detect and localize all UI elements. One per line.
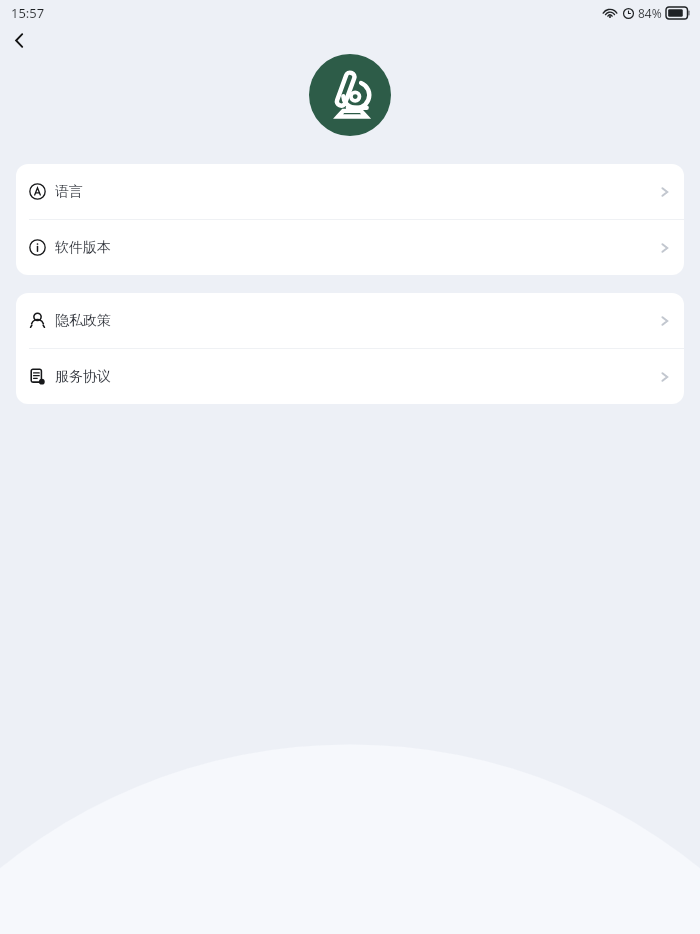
other: App logo (309, 54, 391, 136)
staticText: 服务协议 (55, 368, 111, 386)
staticText: 84% (638, 5, 662, 21)
staticText: 15:57 (11, 4, 45, 22)
button[interactable]: 语言 (16, 164, 684, 219)
button[interactable]: 软件版本 (16, 220, 684, 275)
staticText: 软件版本 (55, 239, 111, 257)
button[interactable]: Back (5, 26, 33, 54)
staticText: 隐私政策 (55, 312, 111, 330)
staticText: 语言 (55, 183, 83, 201)
button[interactable]: 隐私政策 (16, 293, 684, 348)
button[interactable]: 服务协议 (16, 349, 684, 404)
